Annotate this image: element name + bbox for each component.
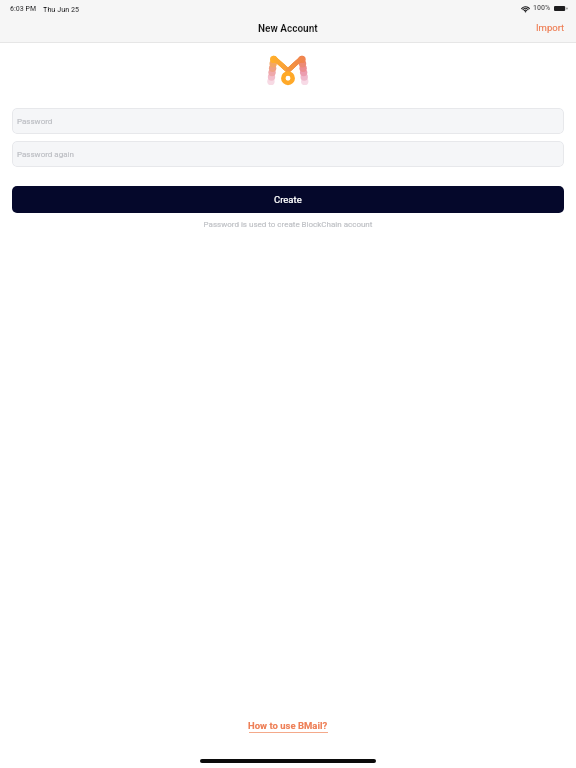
staticText: Password again (17, 150, 74, 159)
button[interactable]: How to use BMail? (243, 718, 333, 735)
staticText: New Account (258, 23, 318, 35)
staticText: How to use BMail? (248, 720, 328, 731)
button[interactable]: Import (525, 17, 576, 38)
button[interactable]: Create (12, 186, 564, 213)
staticText: Password is used to create BlockChain ac… (0, 220, 576, 229)
staticText: 6:03 PM (10, 5, 37, 13)
staticText: Create (274, 194, 302, 205)
staticText: Thu Jun 25 (43, 5, 80, 13)
button[interactable]: Password (12, 108, 564, 134)
staticText: 100% (533, 4, 551, 12)
staticText: Password (17, 117, 53, 126)
staticText: Import (536, 22, 565, 33)
button[interactable]: Password again (12, 141, 564, 167)
